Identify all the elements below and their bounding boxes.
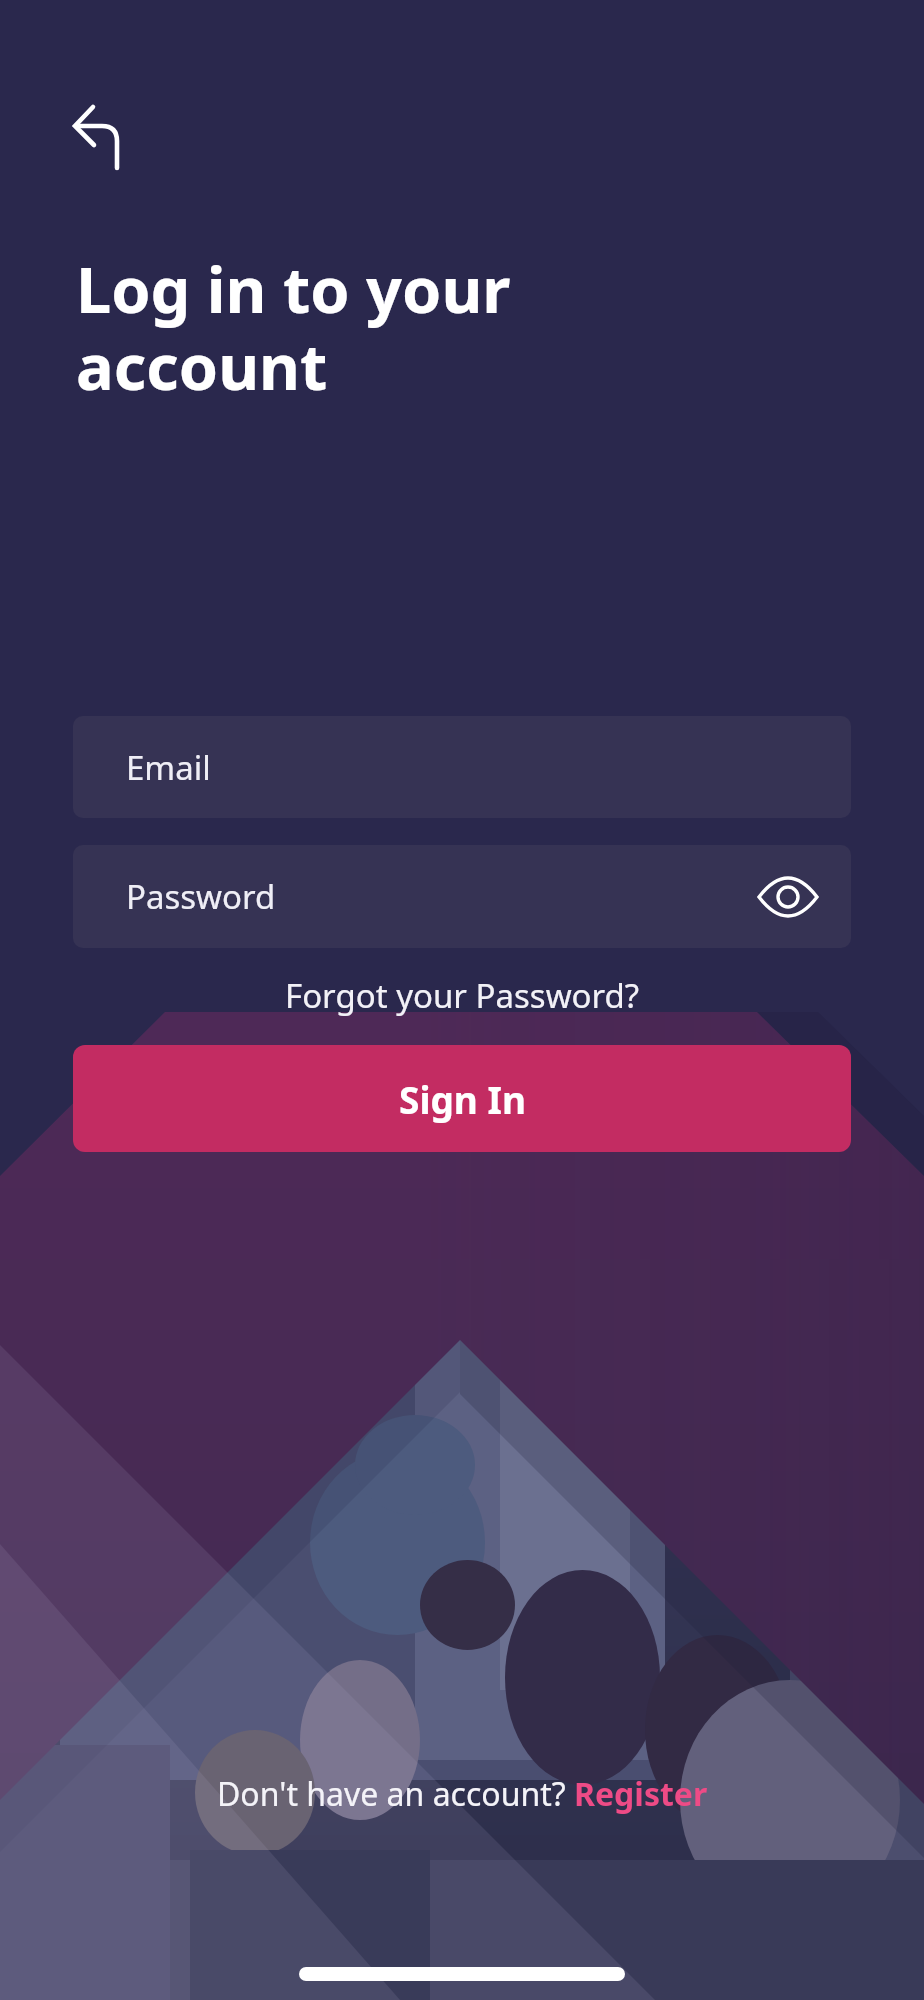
button[interactable]: Sign In — [73, 1045, 851, 1152]
button[interactable]: Forgot your Password? — [285, 973, 640, 1018]
staticText: Don't have an account? — [217, 1772, 574, 1816]
staticText: Password — [126, 874, 276, 919]
button[interactable]: Register — [574, 1772, 708, 1816]
button[interactable] — [755, 872, 821, 922]
staticText: Forgot your Password? — [285, 973, 640, 1018]
staticText: Sign In — [399, 1074, 526, 1124]
button[interactable]: Password — [73, 845, 851, 948]
button[interactable] — [58, 88, 130, 180]
staticText: Register — [574, 1772, 708, 1816]
staticText: Email — [126, 745, 211, 790]
button[interactable]: Email — [73, 716, 851, 818]
staticText: Log in to your account — [76, 246, 511, 408]
